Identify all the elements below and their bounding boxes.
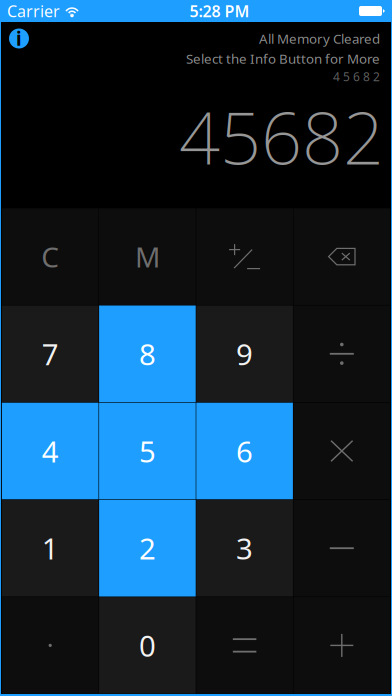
- button[interactable]: Divide: [293, 305, 390, 402]
- staticText: 1: [42, 529, 59, 568]
- button[interactable]: 9: [196, 305, 293, 402]
- staticText: 4 5 6 8 2: [333, 68, 380, 84]
- staticText: 8: [139, 334, 156, 373]
- button[interactable]: 1: [2, 500, 98, 596]
- staticText: 6: [236, 431, 253, 470]
- button[interactable]: 2: [99, 500, 196, 596]
- button[interactable]: Plus: [293, 597, 390, 694]
- staticText: 2: [139, 529, 156, 568]
- button[interactable]: 5: [99, 403, 196, 499]
- staticText: i: [16, 26, 22, 51]
- button[interactable]: 0: [99, 597, 196, 694]
- button[interactable]: 4: [2, 403, 98, 499]
- button[interactable]: Equals: [196, 597, 293, 694]
- button[interactable]: Info: [9, 28, 29, 48]
- button[interactable]: 3: [196, 500, 293, 596]
- staticText: 5:28 PM: [189, 0, 249, 22]
- button[interactable]: Minus: [293, 500, 390, 596]
- button[interactable]: M: [99, 208, 196, 305]
- button[interactable]: Delete: [293, 208, 390, 305]
- staticText: 45682: [179, 89, 384, 184]
- staticText: M: [135, 238, 160, 275]
- button[interactable]: Multiply: [293, 403, 390, 499]
- staticText: 9: [236, 334, 253, 373]
- staticText: Carrier: [7, 0, 60, 22]
- staticText: All Memory Cleared: [259, 30, 380, 47]
- button[interactable]: 8: [99, 305, 196, 402]
- staticText: C: [41, 238, 59, 275]
- staticText: 3: [236, 529, 253, 568]
- staticText: 5: [139, 431, 156, 470]
- button[interactable]: 7: [2, 305, 98, 402]
- staticText: Select the Info Button for More: [186, 50, 380, 67]
- staticText: 4: [42, 431, 59, 470]
- button[interactable]: 6: [196, 403, 293, 499]
- staticText: 7: [42, 334, 59, 373]
- button[interactable]: C: [2, 208, 98, 305]
- staticText: 0: [139, 626, 156, 665]
- button[interactable]: Plus minus: [196, 208, 293, 305]
